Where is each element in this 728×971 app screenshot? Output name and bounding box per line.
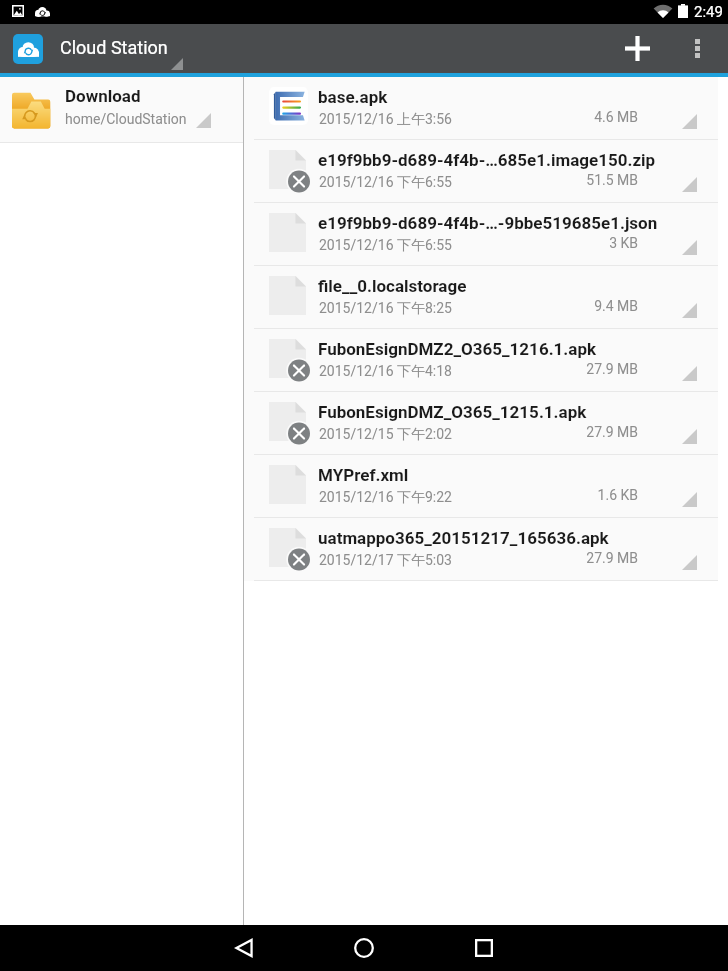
staticText: e19f9bb9-d689-4f4b-…685e1.image150.zip bbox=[318, 150, 688, 170]
staticText: uatmappo365_20151217_165636.apk bbox=[318, 528, 688, 548]
button[interactable]: e19f9bb9-d689-4f4b-…-9bbe519685e1.json bbox=[244, 203, 718, 265]
staticText: 2015/12/16 上午3:56 bbox=[319, 111, 452, 129]
staticText: 27.9 MB bbox=[586, 424, 638, 440]
staticText: base.apk bbox=[318, 87, 688, 107]
staticText: 2015/12/15 下午2:02 bbox=[319, 426, 452, 444]
button[interactable]: MYPref.xml bbox=[244, 455, 718, 517]
staticText: e19f9bb9-d689-4f4b-…-9bbe519685e1.json bbox=[318, 213, 688, 233]
staticText: file__0.localstorage bbox=[318, 276, 688, 296]
button[interactable]: Back bbox=[214, 925, 274, 971]
staticText: 2015/12/16 下午4:18 bbox=[319, 363, 452, 381]
button[interactable]: file__0.localstorage bbox=[244, 266, 718, 328]
staticText: 2015/12/17 下午5:03 bbox=[319, 552, 452, 570]
staticText: 27.9 MB bbox=[586, 550, 638, 566]
staticText: 3 KB bbox=[609, 235, 638, 251]
button[interactable]: FubonEsignDMZ_O365_1215.1.apk bbox=[244, 392, 718, 454]
staticText: 2015/12/16 下午8:25 bbox=[319, 300, 452, 318]
button[interactable]: Home bbox=[334, 925, 394, 971]
staticText: Cloud Station bbox=[60, 37, 168, 58]
staticText: 2015/12/16 下午6:55 bbox=[319, 237, 452, 255]
staticText: 51.5 MB bbox=[586, 172, 638, 188]
button[interactable]: uatmappo365_20151217_165636.apk bbox=[244, 518, 718, 580]
button[interactable]: base.apk bbox=[244, 77, 718, 139]
staticText: MYPref.xml bbox=[318, 465, 688, 485]
button[interactable]: More options bbox=[675, 24, 719, 73]
staticText: home/CloudStation bbox=[65, 111, 187, 127]
staticText: 1.6 KB bbox=[597, 487, 638, 503]
button[interactable]: e19f9bb9-d689-4f4b-…685e1.image150.zip bbox=[244, 140, 718, 202]
staticText: 4.6 MB bbox=[594, 109, 638, 125]
staticText: 2015/12/16 下午6:55 bbox=[319, 174, 452, 192]
staticText: 2015/12/16 下午9:22 bbox=[319, 489, 452, 507]
staticText: 9.4 MB bbox=[594, 298, 638, 314]
staticText: FubonEsignDMZ2_O365_1216.1.apk bbox=[318, 339, 688, 359]
staticText: FubonEsignDMZ_O365_1215.1.apk bbox=[318, 402, 688, 422]
staticText: 27.9 MB bbox=[586, 361, 638, 377]
staticText: 2:49 bbox=[694, 3, 723, 21]
button[interactable]: Download bbox=[0, 77, 243, 142]
button[interactable]: Add bbox=[613, 24, 661, 73]
button[interactable]: FubonEsignDMZ2_O365_1216.1.apk bbox=[244, 329, 718, 391]
staticText: Download bbox=[65, 86, 141, 106]
button[interactable]: Recents bbox=[454, 925, 514, 971]
